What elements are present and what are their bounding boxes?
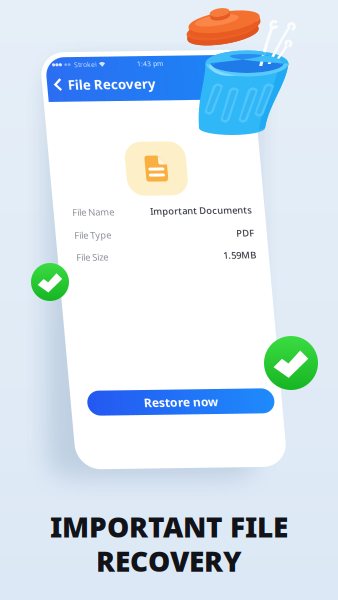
staticText: Restore now [112, 395, 186, 411]
button[interactable]: Restore now [56, 391, 243, 416]
staticText: File Name [58, 206, 100, 219]
staticText: File Size [58, 251, 90, 264]
staticText: PDF [220, 229, 238, 242]
staticText: 1.59MB [205, 251, 238, 264]
staticText: Important Documents [136, 206, 238, 219]
staticText: Strokei [73, 61, 96, 69]
staticText: File Type [58, 229, 95, 242]
staticText: 1:43 pm [136, 61, 162, 69]
staticText: RECOVERY [96, 542, 242, 579]
staticText: File Recovery [65, 76, 153, 94]
staticText: IMPORTANT FILE [50, 508, 288, 545]
button[interactable]: File Recovery [42, 55, 230, 73]
